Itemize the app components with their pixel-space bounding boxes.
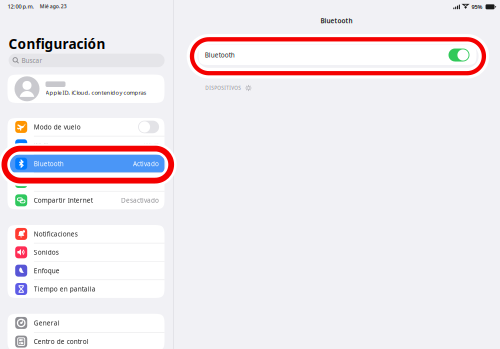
button[interactable]: Bluetooth — [198, 45, 476, 65]
staticText: Buscar — [22, 56, 43, 65]
staticText: 12:00 p.m. — [8, 3, 35, 10]
staticText: Tiempo en pantalla — [34, 285, 96, 293]
staticText: General — [34, 319, 60, 327]
button[interactable]: Bluetooth — [7, 155, 164, 173]
staticText: Desactivado — [121, 196, 159, 205]
staticText: Sonidos — [34, 248, 59, 257]
staticText: DISPOSITIVOS — [205, 85, 241, 91]
staticText: Modo de vuelo — [34, 123, 81, 131]
button[interactable]: Apple ID, iCloud, contenido y compras — [7, 75, 164, 103]
staticText: Apple ID, iCloud, contenido y compras — [45, 89, 146, 96]
button[interactable]: Tiempo en pantalla — [7, 280, 164, 298]
button[interactable]: Enfoque — [7, 262, 164, 280]
button[interactable]: Modo de vuelo — [7, 118, 164, 136]
staticText: Compartir Internet — [34, 196, 93, 205]
staticText: Notificaciones — [34, 230, 78, 238]
staticText: Wi-Fi — [34, 141, 49, 150]
staticText: 95% — [472, 3, 483, 10]
staticText: Bluetooth — [34, 159, 64, 168]
staticText: Wi-Fi — [144, 141, 159, 150]
staticText: Configuración — [9, 35, 106, 53]
staticText: Bluetooth — [320, 17, 352, 25]
button[interactable]: Wi-Fi — [7, 136, 164, 154]
staticText: Centro de control — [34, 337, 89, 346]
staticText: Enfoque — [34, 266, 60, 275]
button[interactable]: Sonidos — [7, 243, 164, 261]
button[interactable]: Compartir Internet — [7, 191, 164, 209]
staticText: Mié ago. 23 — [40, 3, 67, 10]
staticText: Bluetooth — [205, 51, 235, 59]
button[interactable]: Datos móviles — [7, 173, 164, 191]
button[interactable]: General — [7, 314, 164, 332]
button[interactable]: Centro de control — [7, 332, 164, 349]
button[interactable]: Notificaciones — [7, 225, 164, 243]
staticText: Activado — [133, 159, 159, 168]
staticText: Datos móviles — [34, 178, 78, 186]
